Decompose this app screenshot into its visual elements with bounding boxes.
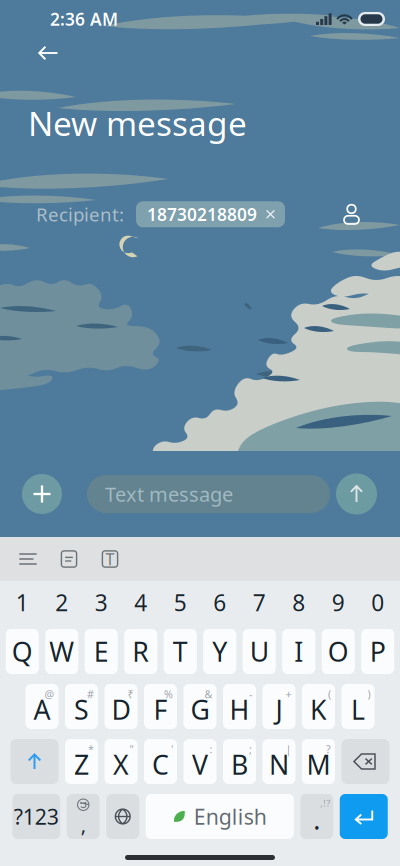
staticText: L	[351, 692, 365, 727]
staticText: -	[249, 687, 252, 701]
button[interactable]: 4	[124, 581, 157, 623]
button[interactable]: Add attachment	[22, 474, 62, 514]
button[interactable]: 8	[282, 581, 315, 623]
button[interactable]: Text editing	[94, 543, 126, 575]
staticText: U	[250, 634, 269, 669]
staticText: S	[74, 692, 89, 727]
staticText: G	[190, 692, 209, 727]
staticText: R	[132, 634, 149, 669]
button[interactable]: V	[183, 739, 216, 784]
button[interactable]: K	[302, 684, 335, 729]
staticText: Recipient:	[36, 202, 124, 227]
button[interactable]: Keyboard menu	[12, 543, 44, 575]
button[interactable]: 7	[243, 581, 276, 623]
staticText: +	[285, 687, 291, 701]
button[interactable]: Choose contact	[343, 204, 360, 225]
button[interactable]	[341, 739, 389, 784]
button[interactable]: .	[300, 794, 333, 839]
staticText: A	[33, 692, 50, 727]
staticText: New message	[28, 101, 247, 145]
button[interactable]: 2	[45, 581, 78, 623]
staticText: ,!?	[320, 797, 330, 809]
staticText: '	[171, 742, 173, 756]
button[interactable]: Clipboard	[53, 543, 85, 575]
staticText: &	[204, 687, 212, 701]
button[interactable]: I	[282, 629, 315, 674]
staticText: H	[229, 692, 249, 727]
staticText: ?	[326, 742, 331, 756]
staticText: 8	[292, 587, 305, 617]
staticText: B	[231, 747, 248, 782]
staticText: English	[194, 802, 267, 831]
staticText: 0	[371, 587, 384, 617]
staticText: Z	[74, 747, 89, 782]
button[interactable]: Text message	[87, 475, 330, 513]
button[interactable]	[10, 739, 58, 784]
button[interactable]: H	[223, 684, 256, 729]
button[interactable]: 18730218809	[136, 201, 285, 227]
button[interactable]: ,	[67, 794, 100, 839]
staticText: C	[152, 747, 169, 782]
staticText: 3	[95, 587, 108, 617]
staticText: J	[275, 692, 282, 727]
button[interactable]: B	[223, 739, 256, 784]
button[interactable]: U	[243, 629, 276, 674]
button[interactable]: Q	[6, 629, 39, 674]
staticText: 4	[134, 587, 147, 617]
button[interactable]: Y	[203, 629, 236, 674]
staticText: Y	[212, 634, 227, 669]
button[interactable]: 5	[164, 581, 197, 623]
staticText: E	[94, 634, 109, 669]
staticText: W	[49, 634, 74, 669]
staticText: 7	[253, 587, 266, 617]
button[interactable]: N	[262, 739, 295, 784]
button[interactable]: W	[45, 629, 78, 674]
button[interactable]: English	[146, 794, 294, 839]
button[interactable]: Send	[336, 473, 377, 514]
staticText: K	[310, 692, 327, 727]
staticText: T	[105, 548, 114, 570]
button[interactable]: T	[164, 629, 197, 674]
button[interactable]: Z	[65, 739, 98, 784]
button[interactable]: C	[144, 739, 177, 784]
staticText: 9	[332, 587, 345, 617]
button[interactable]	[340, 794, 388, 839]
staticText: .	[313, 802, 320, 837]
button[interactable]: O	[322, 629, 355, 674]
button[interactable]: 0	[361, 581, 394, 623]
button[interactable]	[106, 794, 139, 839]
staticText: ;	[249, 742, 252, 756]
button[interactable]: 3	[85, 581, 118, 623]
staticText: 2:36 AM	[50, 7, 118, 30]
staticText: Text message	[105, 481, 233, 507]
staticText: ₹	[127, 687, 133, 701]
staticText: I	[294, 634, 303, 669]
button[interactable]: 6	[203, 581, 236, 623]
staticText: (	[328, 687, 331, 701]
button[interactable]: 9	[322, 581, 355, 623]
button[interactable]: R	[124, 629, 157, 674]
button[interactable]: D	[104, 684, 137, 729]
staticText: M	[306, 747, 330, 782]
button[interactable]: P	[361, 629, 394, 674]
button[interactable]: S	[65, 684, 98, 729]
button[interactable]: J	[262, 684, 295, 729]
button[interactable]: ?123	[12, 794, 60, 839]
button[interactable]: L	[341, 684, 374, 729]
staticText: F	[153, 692, 167, 727]
staticText: 2	[55, 587, 68, 617]
button[interactable]: G	[183, 684, 216, 729]
button[interactable]: E	[85, 629, 118, 674]
button[interactable]: X	[104, 739, 137, 784]
button[interactable]: A	[25, 684, 58, 729]
staticText: *	[88, 742, 94, 756]
button[interactable]: M	[302, 739, 335, 784]
button[interactable]: 1	[6, 581, 39, 623]
staticText: 1	[16, 587, 29, 617]
staticText: 5	[174, 587, 187, 617]
button[interactable]: F	[144, 684, 177, 729]
button[interactable]: Back	[20, 38, 64, 68]
staticText: Q	[12, 634, 33, 669]
staticText: @	[44, 687, 54, 701]
staticText: D	[111, 692, 130, 727]
